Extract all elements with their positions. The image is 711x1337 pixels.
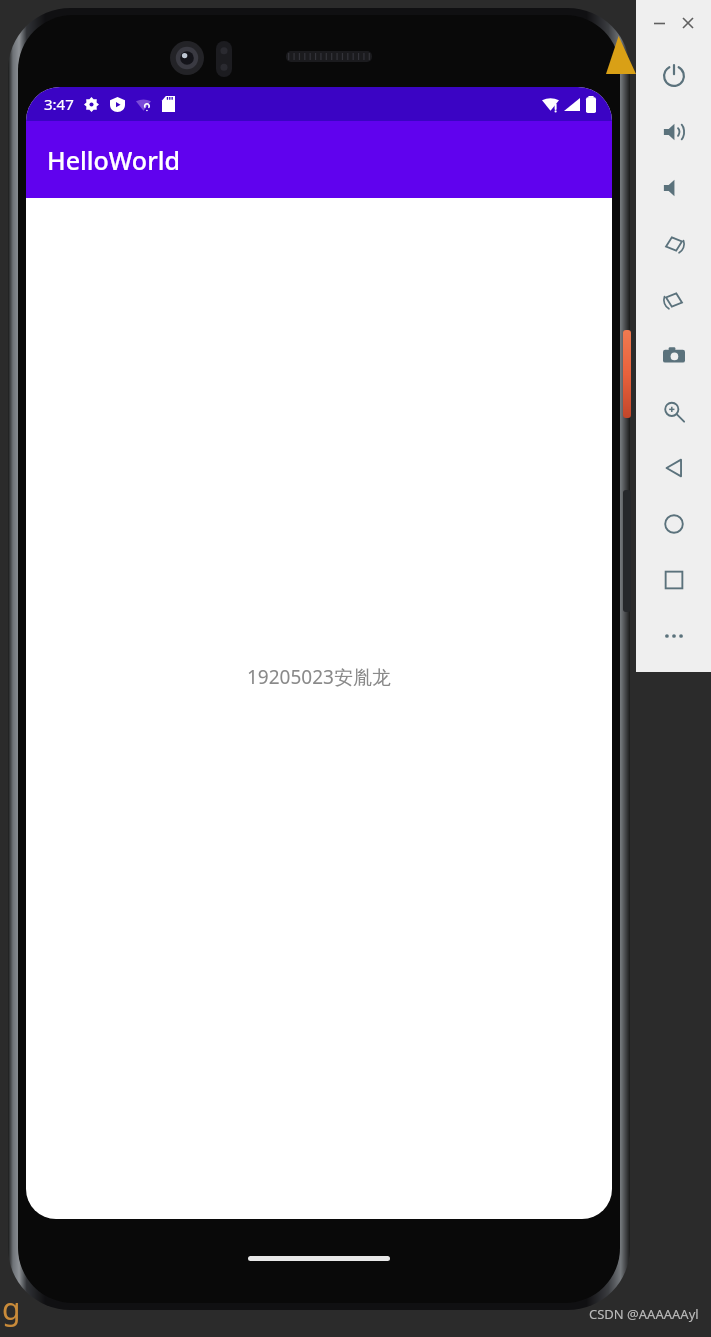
button[interactable]: Close [677, 12, 699, 34]
button[interactable]: Take screenshot [636, 328, 711, 384]
staticText: HelloWorld [47, 143, 180, 177]
button[interactable]: Minimize [648, 12, 670, 34]
button[interactable]: Rotate right [636, 272, 711, 328]
button[interactable]: Volume down [636, 160, 711, 216]
staticText: 3:47 [44, 94, 74, 114]
button[interactable]: More [636, 608, 711, 664]
button[interactable]: Volume up [636, 104, 711, 160]
staticText: CSDN @AAAAAAyl [589, 1305, 699, 1323]
button[interactable]: Back [636, 440, 711, 496]
button[interactable]: Power [623, 330, 631, 418]
staticText: 19205023安胤龙 [247, 664, 391, 690]
button[interactable]: Home [636, 496, 711, 552]
staticText: g [2, 1288, 21, 1329]
button[interactable]: Overview [636, 552, 711, 608]
button[interactable]: Power [636, 48, 711, 104]
button[interactable]: Zoom [636, 384, 711, 440]
button[interactable]: Rotate left [636, 216, 711, 272]
button[interactable]: Home gesture [248, 1256, 390, 1261]
